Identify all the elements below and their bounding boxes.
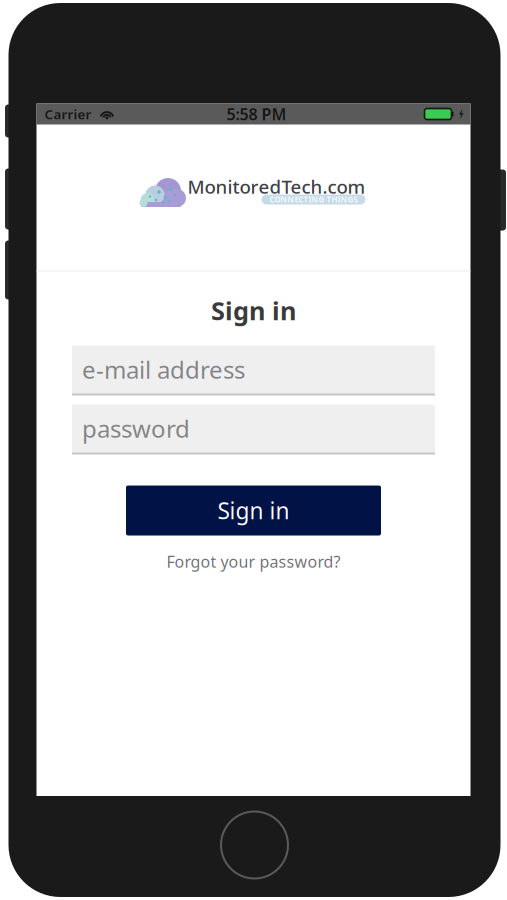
staticText: Sign in xyxy=(211,294,296,327)
staticText: CONNECTING THINGS xyxy=(269,194,357,205)
staticText: Sign in xyxy=(217,495,289,525)
staticText: 5:58 PM xyxy=(226,103,286,125)
staticText: password xyxy=(82,413,190,444)
button[interactable]: e-mail address xyxy=(72,345,435,395)
staticText: MonitoredTech.com xyxy=(187,174,365,199)
button[interactable]: Forgot your password? xyxy=(166,551,340,571)
staticText: Carrier xyxy=(44,105,91,123)
staticText: Forgot your password? xyxy=(166,551,340,572)
button[interactable]: Sign in xyxy=(126,485,381,535)
staticText: e-mail address xyxy=(82,354,245,385)
button[interactable]: password xyxy=(72,404,435,454)
